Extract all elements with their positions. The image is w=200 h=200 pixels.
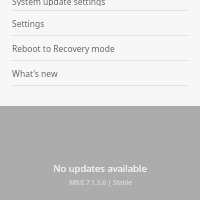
button[interactable]: What's new bbox=[0, 61, 200, 85]
button[interactable]: System update settings bbox=[0, 0, 200, 10]
button[interactable]: Settings bbox=[0, 11, 200, 35]
staticText: What's new bbox=[12, 68, 58, 80]
staticText: System update settings bbox=[12, 0, 106, 6]
staticText: Reboot to Recovery mode bbox=[12, 43, 115, 55]
staticText: MIUI 7.1.3.0 | Stable bbox=[69, 178, 132, 187]
staticText: Settings bbox=[12, 18, 45, 30]
staticText: No updates available bbox=[53, 162, 147, 175]
button[interactable]: Reboot to Recovery mode bbox=[0, 36, 200, 60]
